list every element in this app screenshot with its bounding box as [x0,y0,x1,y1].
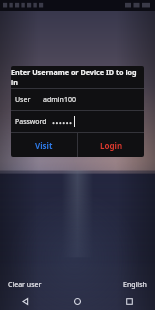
button[interactable]: Clear user [6,278,44,292]
button[interactable]: User [15,89,140,110]
staticText: admin100 [43,95,76,105]
staticText: Clear user [8,280,42,290]
staticText: English [123,280,147,290]
button[interactable]: Recent apps [103,292,155,310]
button[interactable]: Home [51,292,103,310]
staticText: Enter Username or Device ID to log in [11,67,144,87]
button[interactable]: Password [15,111,140,132]
staticText: Login [100,140,123,151]
staticText: User [15,95,31,105]
staticText: Visit [35,140,53,151]
button[interactable]: English [121,278,149,292]
button[interactable]: Visit [11,133,77,157]
button[interactable]: Back [0,292,51,310]
staticText: Password [15,117,47,127]
button[interactable]: Login [78,133,144,157]
